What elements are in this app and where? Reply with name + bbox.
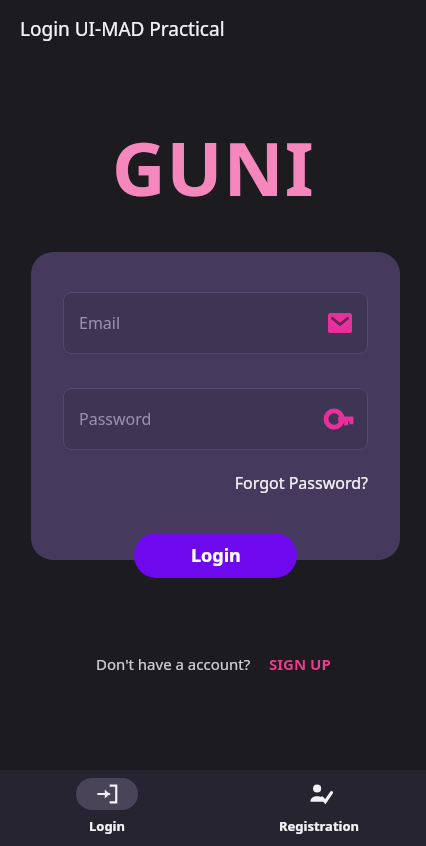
button[interactable]: Registration	[213, 770, 426, 846]
staticText: Password	[79, 408, 326, 430]
other: Password	[326, 410, 352, 428]
other: Email	[328, 313, 352, 333]
staticText: Email	[79, 312, 328, 334]
other: Login	[96, 783, 118, 805]
button[interactable]: Password	[63, 388, 368, 450]
button[interactable]: SIGN UP	[269, 652, 331, 676]
other: Registration	[308, 782, 332, 806]
button[interactable]: Forgot Password?	[234, 468, 368, 498]
staticText: Registration	[279, 817, 360, 835]
staticText: Don't have a account?	[96, 654, 251, 674]
staticText: Login UI-MAD Practical	[20, 16, 225, 42]
staticText: Login	[191, 543, 241, 568]
button[interactable]: Email	[63, 292, 368, 354]
staticText: Login	[89, 817, 125, 835]
button[interactable]: Login	[134, 533, 297, 578]
button[interactable]: Login	[0, 770, 213, 846]
staticText: GUNI	[112, 117, 315, 218]
